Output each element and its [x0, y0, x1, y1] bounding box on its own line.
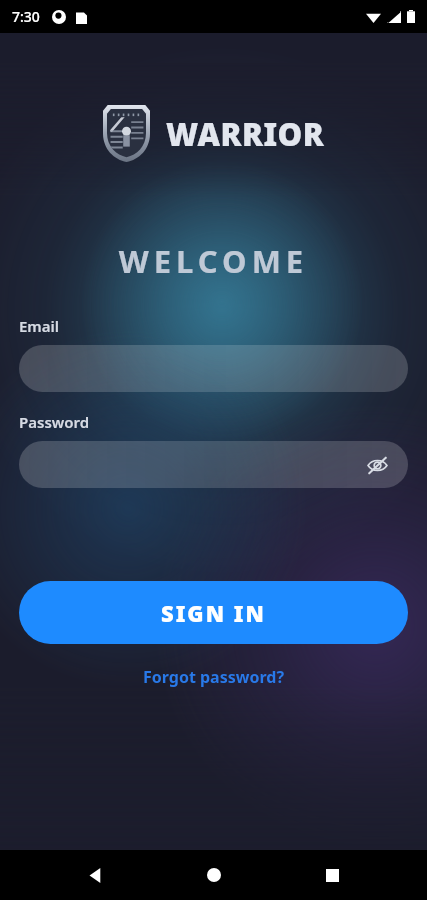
button[interactable]: Back [71, 851, 119, 899]
button[interactable] [19, 345, 408, 392]
staticText: 7:30 [12, 7, 40, 26]
button[interactable]: Home [190, 851, 238, 899]
button[interactable]: Forgot password? [133, 661, 295, 693]
button[interactable]: SIGN IN [19, 581, 408, 644]
staticText: Password [19, 412, 90, 432]
button[interactable]: Recent apps [308, 851, 356, 899]
staticText: WELCOME [0, 240, 427, 282]
staticText: SIGN IN [161, 598, 266, 628]
staticText: Forgot password? [143, 666, 285, 688]
button[interactable]: Show password [360, 448, 394, 482]
staticText: Email [19, 316, 60, 336]
button[interactable]: Show password [19, 441, 408, 488]
staticText: WARRIOR [166, 113, 325, 155]
